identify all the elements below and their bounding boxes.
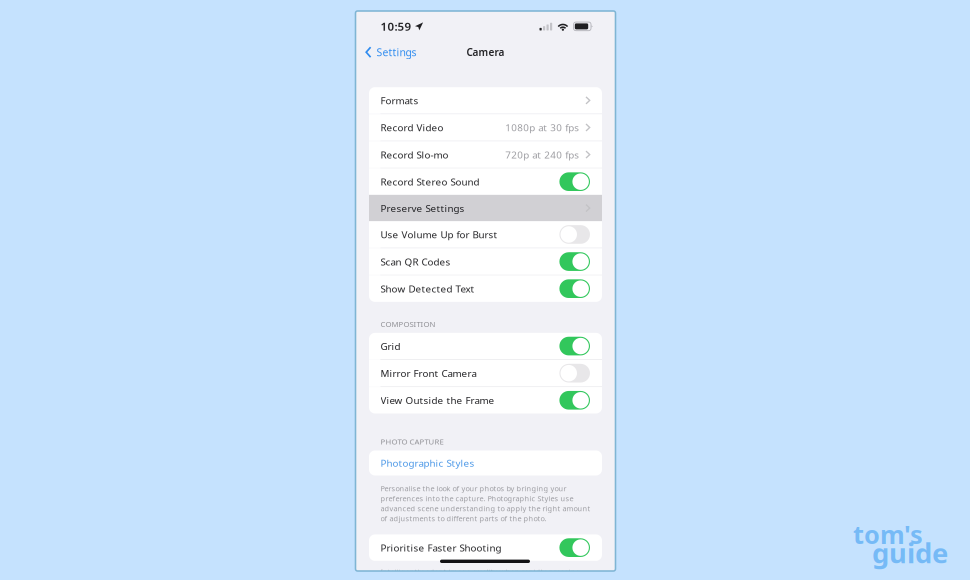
staticText: Record Video (380, 121, 443, 134)
staticText: Prioritise Faster Shooting (380, 541, 501, 554)
staticText: Intelligently adapt image quality when r… (380, 567, 580, 577)
staticText: Scan QR Codes (380, 255, 450, 268)
button[interactable]: Record Slo-mo (369, 141, 602, 168)
button[interactable]: Record Stereo Sound (369, 168, 602, 195)
staticText: Preserve Settings (380, 201, 464, 215)
staticText: 720p at 240 fps (505, 148, 579, 161)
staticText: View Outside the Frame (380, 394, 494, 407)
staticText: Settings (376, 45, 416, 59)
staticText: Personalise the look of your photos by b… (380, 483, 590, 523)
staticText: Camera (466, 45, 504, 59)
button[interactable]: Use Volume Up for Burst (369, 221, 602, 248)
staticText: tom's (853, 517, 923, 551)
button[interactable]: Formats (369, 87, 602, 114)
button[interactable]: Mirror Front Camera (369, 360, 602, 386)
button[interactable]: Settings (355, 42, 422, 62)
staticText: Photographic Styles (380, 456, 474, 470)
button[interactable]: View Outside the Frame (369, 387, 602, 413)
staticText: guide (872, 534, 948, 571)
button[interactable]: Photographic Styles (369, 450, 602, 475)
button[interactable]: Record Video (369, 114, 602, 141)
staticText: PHOTO CAPTURE (380, 436, 443, 447)
staticText: 10:59 (380, 19, 411, 34)
staticText: Use Volume Up for Burst (380, 228, 497, 241)
staticText: Record Stereo Sound (380, 175, 479, 188)
button[interactable]: Prioritise Faster Shooting (369, 534, 602, 561)
button[interactable]: Preserve Settings (369, 195, 602, 221)
staticText: Formats (380, 94, 418, 107)
button[interactable]: Grid (369, 333, 602, 359)
button[interactable]: Show Detected Text (369, 275, 602, 302)
staticText: Grid (380, 339, 400, 353)
staticText: Record Slo-mo (380, 148, 448, 161)
staticText: Show Detected Text (380, 282, 474, 295)
button[interactable]: Scan QR Codes (369, 248, 602, 275)
staticText: 1080p at 30 fps (505, 121, 579, 134)
staticText: COMPOSITION (380, 319, 435, 329)
staticText: Mirror Front Camera (380, 366, 476, 380)
